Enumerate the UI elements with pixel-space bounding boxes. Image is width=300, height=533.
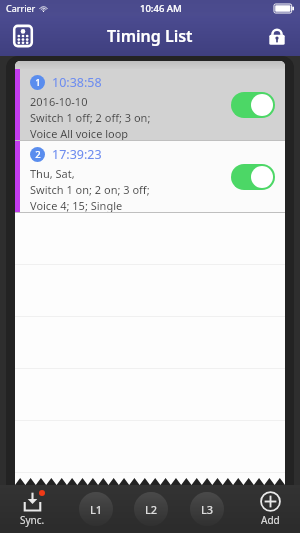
staticText: Timing List — [107, 25, 193, 47]
button[interactable]: Keypad — [8, 21, 38, 51]
button[interactable]: Add — [246, 485, 294, 533]
button[interactable]: Lock — [262, 21, 292, 51]
button[interactable]: Sync. — [6, 485, 58, 533]
button[interactable]: 1 — [15, 69, 285, 140]
staticText: Carrier — [6, 2, 36, 14]
staticText: 2 — [35, 148, 41, 161]
button[interactable]: 2 — [15, 141, 285, 212]
staticText: Voice All voice loop — [30, 126, 129, 140]
staticText: 10:38:58 — [52, 74, 102, 91]
button[interactable]: Enabled — [231, 164, 275, 190]
staticText: Add — [261, 513, 280, 527]
staticText: 17:39:23 — [52, 146, 102, 163]
staticText: L2 — [145, 502, 158, 517]
staticText: 10:46 AM — [140, 2, 182, 15]
button[interactable]: L2 — [134, 492, 168, 526]
staticText: L1 — [90, 502, 103, 517]
staticText: L3 — [201, 502, 214, 517]
staticText: 1 — [35, 76, 41, 89]
staticText: Voice 4; 15; Single — [30, 198, 123, 212]
button[interactable]: Enabled — [231, 92, 275, 118]
button[interactable]: L1 — [79, 492, 113, 526]
button[interactable]: L3 — [190, 492, 224, 526]
staticText: Switch 1 on; 2 on; 3 off; — [30, 182, 150, 197]
staticText: Thu, Sat, — [30, 166, 75, 181]
staticText: Switch 1 off; 2 off; 3 on; — [30, 110, 151, 125]
staticText: Sync. — [20, 513, 45, 527]
staticText: 2016-10-10 — [30, 94, 88, 109]
